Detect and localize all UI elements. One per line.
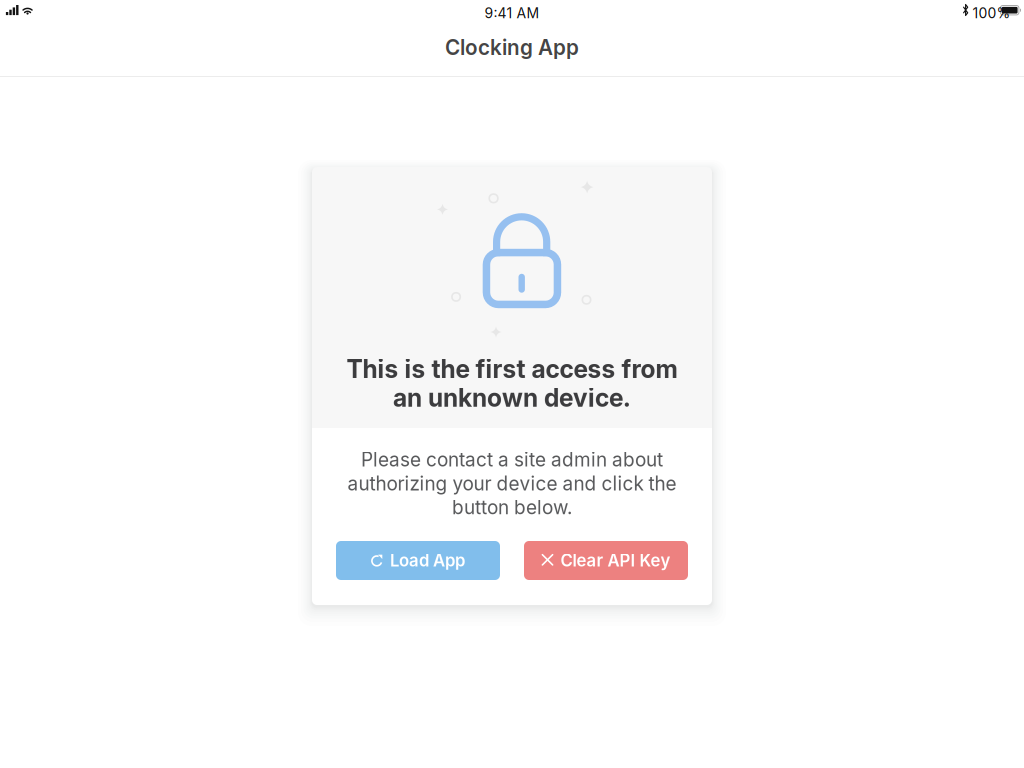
button[interactable]: Clear API Key [524,541,688,580]
staticText: an unknown device. [393,383,631,413]
staticText: 100% [972,5,1010,21]
staticText: button below. [452,496,572,519]
staticText: 9:41 AM [484,5,539,22]
staticText: Please contact a site admin about [361,448,663,471]
staticText: Clocking App [445,35,579,60]
staticText: Load App [390,550,465,571]
staticText: This is the first access from [346,354,677,384]
button[interactable]: Load App [336,541,500,580]
staticText: Clear API Key [560,550,670,571]
button[interactable]: Clocking App [0,0,1024,60]
staticText: authorizing your device and click the [347,472,676,495]
